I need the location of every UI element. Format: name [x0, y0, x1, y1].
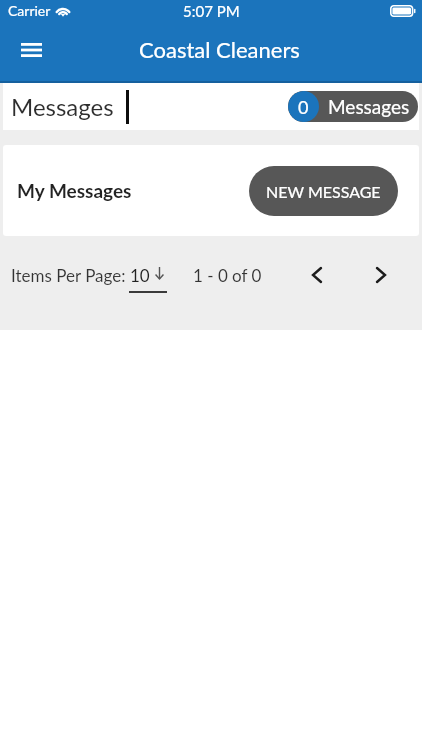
staticText: Carrier: [8, 2, 51, 19]
staticText: 5:07 PM: [183, 2, 240, 20]
other: Battery full: [390, 5, 416, 17]
staticText: My Messages: [17, 179, 132, 202]
button[interactable]: Open navigation menu: [10, 29, 52, 71]
button[interactable]: NEW MESSAGE: [249, 166, 398, 216]
button[interactable]: Previous page: [298, 256, 336, 294]
staticText: 10: [130, 265, 150, 285]
staticText: Coastal Cleaners: [139, 36, 300, 62]
staticText: Messages: [11, 92, 114, 121]
staticText: 0: [298, 96, 309, 118]
staticText: Messages: [328, 95, 410, 118]
button[interactable]: 0: [288, 91, 418, 122]
staticText: NEW MESSAGE: [266, 182, 381, 201]
staticText: Items Per Page:: [11, 265, 126, 285]
staticText: 1 - 0 of 0: [193, 265, 262, 285]
button[interactable]: Next page: [362, 256, 400, 294]
button[interactable]: Items per page: 10: [128, 261, 168, 295]
